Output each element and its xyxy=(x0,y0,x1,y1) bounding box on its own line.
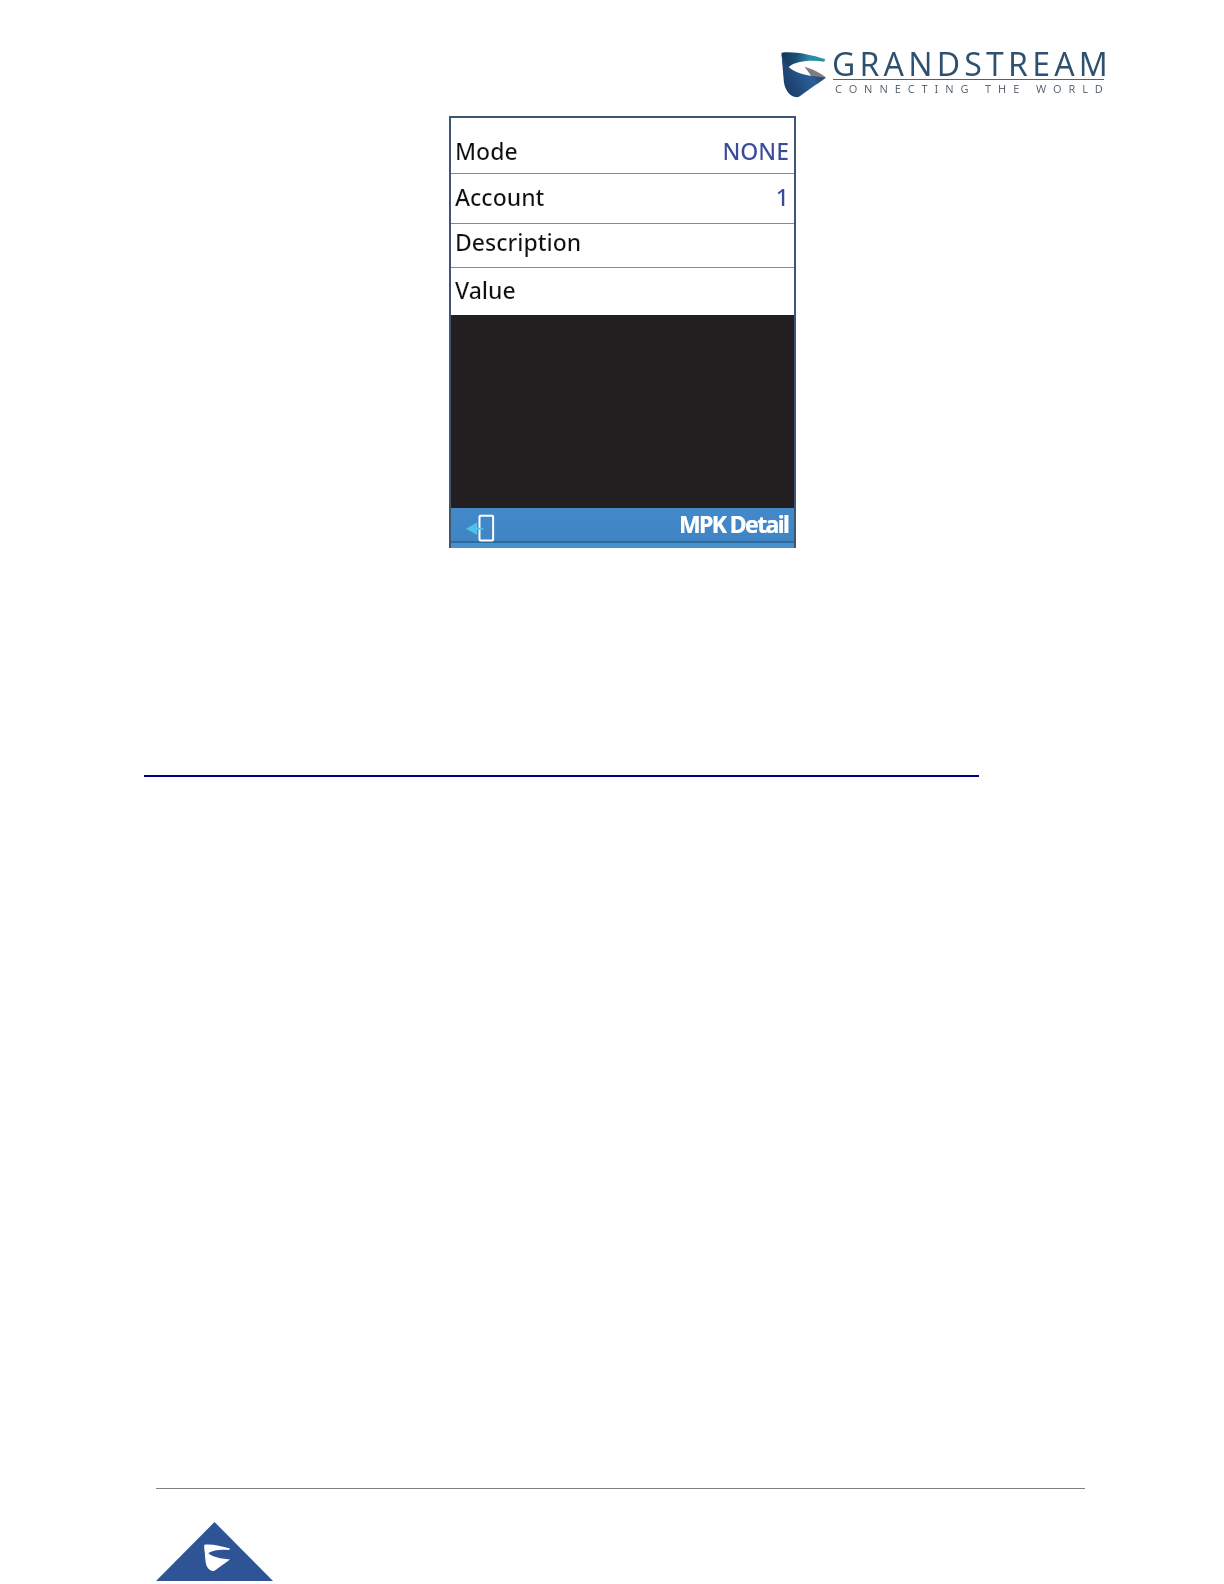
staticText: Value xyxy=(455,274,516,305)
staticText: NONE xyxy=(446,135,789,166)
button[interactable]: Back xyxy=(466,513,497,541)
staticText: Account xyxy=(455,181,545,212)
staticText: CONNECTING THE WORLD xyxy=(835,81,1110,96)
button[interactable]: Mode xyxy=(451,118,794,173)
staticText: GRANDSTREAM xyxy=(832,42,1113,86)
button[interactable]: Description xyxy=(451,224,794,268)
staticText: Description xyxy=(455,226,582,257)
staticText: 1 xyxy=(446,181,789,212)
staticText: MPK Detail xyxy=(679,508,789,539)
button[interactable]: Account xyxy=(451,174,794,222)
staticText: Mode xyxy=(455,135,518,166)
button[interactable]: Value xyxy=(451,268,794,314)
